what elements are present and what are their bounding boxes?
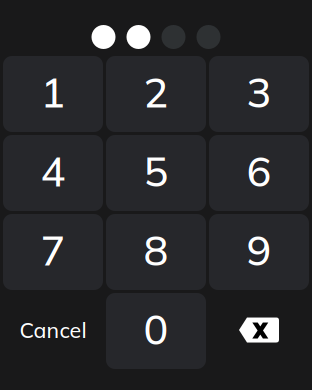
staticText: 2 [143,66,168,118]
staticText: 3 [246,66,271,118]
staticText: 7 [40,224,65,276]
button[interactable]: Delete [209,293,309,369]
button[interactable]: 7 [3,214,103,290]
button[interactable]: 4 [3,135,103,211]
staticText: 8 [143,224,168,276]
staticText: 5 [143,145,168,197]
staticText: Cancel [19,317,86,343]
staticText: 4 [40,145,65,197]
button[interactable]: 2 [106,56,206,132]
staticText: 0 [143,303,168,355]
button[interactable]: 0 [106,293,206,369]
button[interactable]: Cancel [3,293,103,369]
staticText: 9 [246,224,271,276]
staticText: 6 [246,145,271,197]
button[interactable]: 1 [3,56,103,132]
button[interactable]: 3 [209,56,309,132]
button[interactable]: 5 [106,135,206,211]
button[interactable]: 6 [209,135,309,211]
button[interactable]: 8 [106,214,206,290]
staticText: 1 [40,66,65,118]
button[interactable]: 9 [209,214,309,290]
